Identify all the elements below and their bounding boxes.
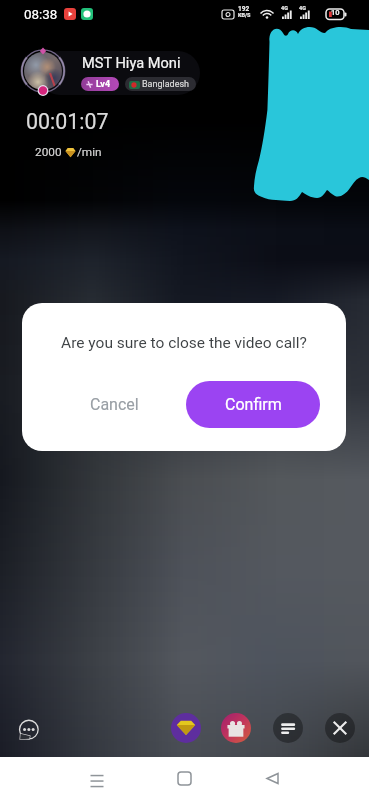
staticText: 2000 xyxy=(35,145,62,159)
button[interactable]: More xyxy=(273,713,303,743)
staticText: KB/S xyxy=(238,12,251,18)
staticText: /min xyxy=(77,145,102,159)
staticText: 4G xyxy=(299,5,306,11)
button[interactable]: Confirm xyxy=(186,381,320,428)
staticText: MST Hiya Moni xyxy=(82,54,181,71)
button[interactable]: Home xyxy=(162,757,207,800)
staticText: 192 xyxy=(238,5,250,13)
staticText: 4G xyxy=(281,5,288,11)
button[interactable]: Recents xyxy=(74,757,119,800)
staticText: Bangladesh xyxy=(142,79,190,90)
button[interactable]: Close xyxy=(325,713,355,743)
button[interactable]: Diamonds xyxy=(171,713,201,743)
button[interactable] xyxy=(38,51,200,95)
button[interactable]: Back xyxy=(250,757,295,800)
button[interactable]: Cancel xyxy=(56,381,172,428)
staticText: 00:01:07 xyxy=(26,109,109,134)
staticText: 10 xyxy=(331,8,340,17)
staticText: Lv4 xyxy=(96,79,111,90)
staticText: Are you sure to close the video call? xyxy=(22,334,346,352)
button[interactable]: Gift xyxy=(221,713,251,743)
button[interactable]: Chat xyxy=(14,715,44,745)
staticText: Cancel xyxy=(90,395,139,414)
staticText: Confirm xyxy=(225,395,282,414)
staticText: 08:38 xyxy=(24,7,58,23)
